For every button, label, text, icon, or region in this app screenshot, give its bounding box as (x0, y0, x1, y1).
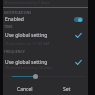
button[interactable]: Set (47, 83, 87, 95)
staticText: Reminders every 7 days (5, 0, 50, 5)
staticText: Use global setting (5, 59, 48, 66)
staticText: FREQUENCY (4, 49, 25, 54)
button[interactable]: Cancel (3, 83, 47, 95)
staticText: NOTIFICATIONS (4, 10, 32, 15)
button[interactable]: Use global setting (3, 31, 88, 39)
button[interactable]: Use global setting (3, 58, 88, 66)
staticText: Enabled (5, 16, 24, 23)
button[interactable]: Frequency slider (3, 71, 88, 81)
staticText: TIME (4, 24, 13, 29)
staticText: Use global setting (5, 32, 48, 39)
button[interactable]: Enabled (3, 15, 88, 23)
staticText: Cancel (17, 86, 33, 93)
staticText: Set (63, 86, 71, 93)
staticText: Reminders every 30 days (6, 65, 53, 70)
staticText: Reminders at 11:00 AM (6, 41, 50, 46)
